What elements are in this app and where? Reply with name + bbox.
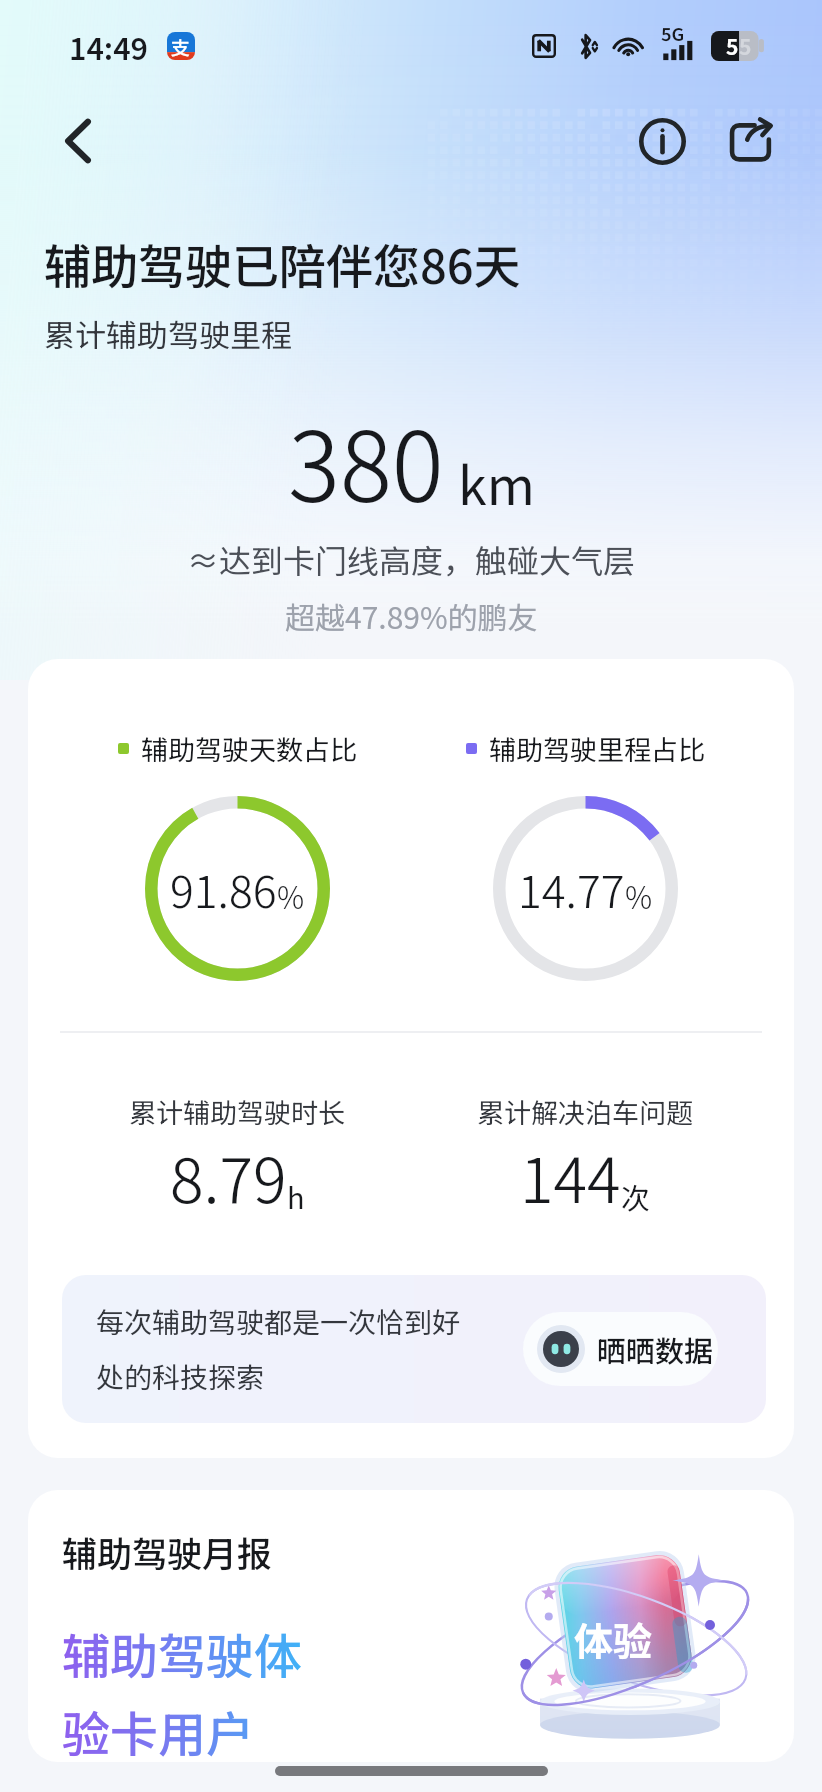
staticText: % [625,874,653,917]
staticText: 144 [520,1131,621,1221]
button[interactable]: 辅助驾驶月报 [28,1490,794,1762]
button[interactable]: 晒晒数据 [523,1312,718,1386]
staticText: 累计辅助驾驶里程 [44,311,292,356]
staticText: 380 [288,391,444,530]
staticText: 14.77 [518,857,625,921]
button[interactable]: Back [42,105,114,177]
staticText: 晒晒数据 [597,1328,714,1370]
staticText: % [277,874,305,917]
staticText: h [287,1175,305,1217]
staticText: 处的科技探索 [96,1356,265,1397]
staticText: 辅助驾驶里程占比 [489,729,705,768]
staticText: 辅助驾驶天数占比 [141,729,357,768]
button[interactable]: Info [630,109,694,173]
staticText: 辅助驾驶体 [62,1618,303,1688]
staticText: 5 [726,31,739,61]
staticText: 累计解决泊车问题 [477,1092,693,1131]
staticText: 次 [621,1175,651,1217]
staticText: 5G [661,20,685,46]
staticText: 累计辅助驾驶时长 [129,1092,345,1131]
staticText: 支 [171,33,191,60]
staticText: 8.79 [170,1131,287,1221]
staticText: 辅助驾驶月报 [62,1526,273,1577]
staticText: 91.86 [170,857,277,921]
staticText: 体验 [574,1611,653,1667]
staticText: 5 [739,31,752,61]
staticText: km [458,445,535,520]
button[interactable]: Share [718,109,782,173]
staticText: 超越47.89%的鹏友 [285,594,538,637]
staticText: ≈达到卡门线高度，触碰大气层 [187,536,636,582]
staticText: 14:49 [69,25,148,68]
staticText: 验卡用户 [62,1696,255,1762]
staticText: 辅助驾驶已陪伴您86天 [44,229,521,297]
staticText: 每次辅助驾驶都是一次恰到好 [96,1301,461,1342]
